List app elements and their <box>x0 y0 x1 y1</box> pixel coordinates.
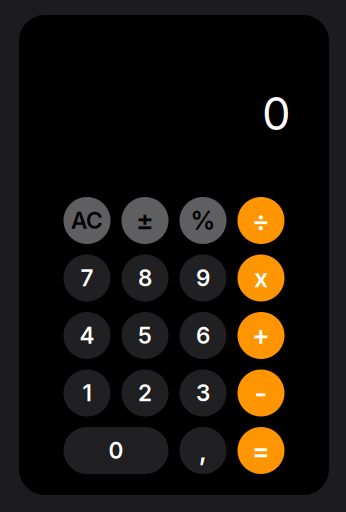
button[interactable]: 8 <box>121 254 168 301</box>
staticText: 0 <box>108 437 123 464</box>
button[interactable]: 7 <box>63 254 110 301</box>
staticText: 2 <box>138 379 152 407</box>
staticText: AC <box>71 207 103 234</box>
staticText: 1 <box>82 379 91 407</box>
button[interactable]: Multiply <box>237 254 284 301</box>
button[interactable]: 6 <box>179 312 226 359</box>
staticText: 6 <box>196 322 210 349</box>
staticText: % <box>190 205 215 236</box>
staticText: 9 <box>196 264 210 292</box>
staticText: ÷ <box>252 204 270 237</box>
button[interactable]: Divide <box>237 197 284 244</box>
button[interactable]: 2 <box>121 369 168 416</box>
button[interactable]: 4 <box>63 312 110 359</box>
button[interactable]: 9 <box>179 254 226 301</box>
staticText: 8 <box>138 264 152 292</box>
staticText: = <box>252 434 270 467</box>
button[interactable]: 3 <box>179 369 226 416</box>
button[interactable]: 0 <box>63 427 168 474</box>
staticText: 5 <box>138 322 152 349</box>
staticText: + <box>252 319 270 352</box>
button[interactable]: 1 <box>63 369 110 416</box>
button[interactable]: Clear <box>63 197 110 244</box>
staticText: ± <box>136 204 154 237</box>
staticText: 4 <box>79 322 94 349</box>
staticText: - <box>254 376 267 410</box>
button[interactable]: Plus minus <box>121 197 168 244</box>
button[interactable]: Percent <box>179 197 226 244</box>
button[interactable]: 5 <box>121 312 168 359</box>
staticText: , <box>199 434 207 467</box>
button[interactable]: Equals <box>237 427 284 474</box>
button[interactable]: Decimal separator <box>179 427 226 474</box>
staticText: 7 <box>80 264 93 292</box>
staticText: 3 <box>196 379 210 407</box>
button[interactable]: Add <box>237 312 284 359</box>
staticText: x <box>254 263 268 293</box>
staticText: 0 <box>262 86 291 141</box>
button[interactable]: Subtract <box>237 369 284 416</box>
